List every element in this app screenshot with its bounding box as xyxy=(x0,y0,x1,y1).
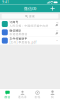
button[interactable]: 文件传输助手 xyxy=(0,37,60,45)
staticText: 微信团队 xyxy=(9,29,21,32)
staticText: 我 xyxy=(51,96,54,99)
button[interactable]: 发现 xyxy=(30,89,45,100)
staticText: 发现 xyxy=(34,96,40,99)
staticText: 通讯录 xyxy=(18,96,27,99)
staticText: 微信(3) xyxy=(24,6,36,11)
staticText: 欢迎使用微信 xyxy=(9,32,27,36)
button[interactable]: 我 xyxy=(45,89,60,100)
staticText: 文件传输助手 xyxy=(9,37,27,40)
button[interactable]: 微信 xyxy=(0,89,15,100)
staticText: 9:41 xyxy=(2,0,9,4)
button[interactable]: 订阅号 xyxy=(0,20,60,28)
staticText: 9/1 xyxy=(56,40,58,41)
staticText: 订阅号 xyxy=(9,21,18,24)
staticText: 人民日报：中国经济稳中向好 xyxy=(9,24,48,27)
staticText: 微信 xyxy=(4,96,10,99)
staticText: 搜索 xyxy=(29,15,35,18)
staticText: 周一 xyxy=(56,30,58,32)
staticText: [文件] 季度报告.pdf xyxy=(9,41,36,44)
button[interactable]: 微信团队 xyxy=(0,28,60,37)
button[interactable]: 通讯录 xyxy=(15,89,30,100)
button[interactable]: Add xyxy=(47,5,60,12)
